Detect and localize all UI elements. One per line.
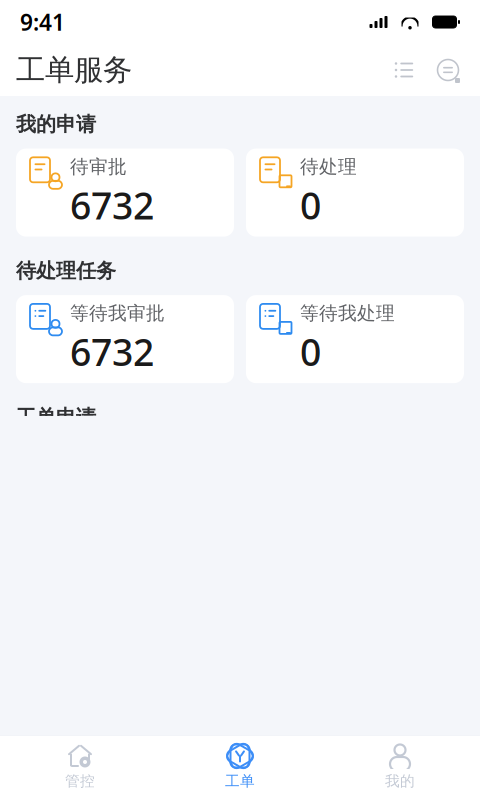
button[interactable]: 待处理 xyxy=(246,149,464,237)
button[interactable]: 我的 xyxy=(320,736,480,800)
staticText: 管控 xyxy=(65,772,95,790)
button[interactable]: 工单 xyxy=(160,736,320,800)
staticText: 我的申请 xyxy=(16,112,96,137)
staticText: 0 xyxy=(300,180,321,230)
staticText: 待审批 xyxy=(70,155,127,178)
staticText: 等待我审批 xyxy=(70,302,165,325)
staticText: 工单申请 xyxy=(16,405,96,430)
button[interactable]: 等待我审批 xyxy=(16,295,234,383)
staticText: 待处理任务 xyxy=(16,259,116,283)
staticText: 0 xyxy=(300,327,321,376)
staticText: 工单服务 xyxy=(16,52,132,88)
button[interactable]: 消息 xyxy=(432,54,464,86)
staticText: 工单 xyxy=(225,772,255,790)
staticText: 6732 xyxy=(70,327,154,376)
button[interactable]: 待审批 xyxy=(16,149,234,237)
button[interactable]: 列表 xyxy=(388,54,420,86)
staticText: 我的 xyxy=(385,772,415,790)
staticText: 等待我处理 xyxy=(300,302,395,325)
button[interactable]: 管控 xyxy=(0,736,160,800)
button[interactable]: 等待我处理 xyxy=(246,295,464,383)
staticText: 6732 xyxy=(70,180,154,230)
staticText: 待处理 xyxy=(300,155,357,178)
staticText: 9:41 xyxy=(20,7,65,37)
